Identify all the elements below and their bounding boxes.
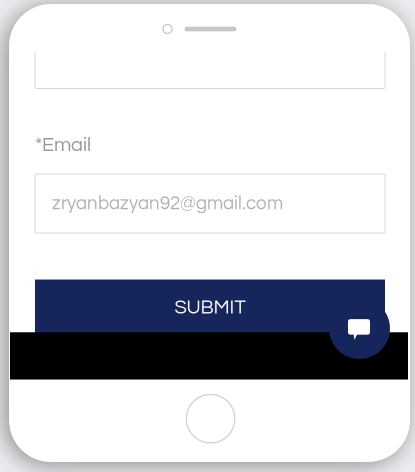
button[interactable]: Open chat — [329, 298, 390, 359]
staticText: *Email — [35, 135, 91, 155]
button[interactable]: SUBMIT — [35, 279, 385, 335]
staticText: SUBMIT — [174, 297, 245, 318]
staticText: zryanbazyan92@gmail.com — [52, 194, 283, 213]
